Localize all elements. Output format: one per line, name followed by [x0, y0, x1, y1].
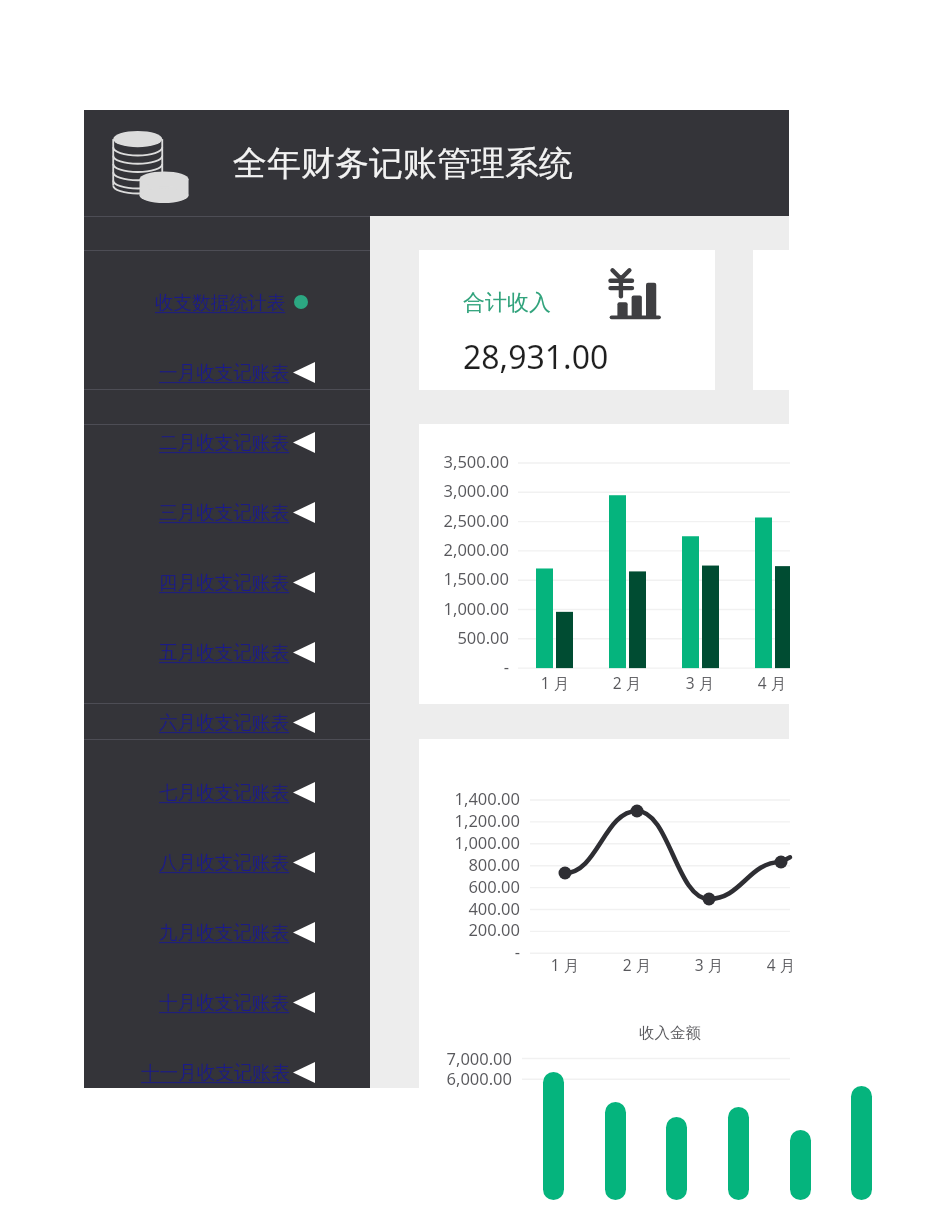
staticText: 28,931.00 — [463, 335, 609, 379]
button[interactable]: 九月收支记账表 — [84, 909, 370, 955]
staticText: 三月收支记账表 — [159, 501, 290, 524]
staticText: 1 月 — [530, 954, 600, 980]
staticText: 1 月 — [520, 672, 590, 698]
staticText: 400.00 — [400, 897, 520, 923]
button[interactable]: 合计收入 — [419, 250, 715, 390]
staticText: 全年财务记账管理系统 — [233, 142, 573, 185]
staticText: 1,000.00 — [389, 597, 509, 623]
other: Coins — [113, 131, 189, 203]
button[interactable]: Coins — [84, 110, 789, 216]
staticText: 一月收支记账表 — [159, 361, 290, 384]
button[interactable]: Income trend line chart — [419, 739, 950, 1230]
other: Income chart — [610, 270, 660, 320]
staticText: 1,000.00 — [400, 831, 520, 857]
button[interactable]: 五月收支记账表 — [84, 629, 370, 675]
staticText: 二月收支记账表 — [159, 431, 290, 454]
staticText: 500.00 — [389, 626, 509, 652]
staticText: 五月收支记账表 — [159, 641, 290, 664]
staticText: - — [400, 940, 520, 966]
staticText: 3 月 — [674, 954, 744, 980]
staticText: 六月收支记账表 — [159, 711, 290, 734]
staticText: 1,200.00 — [400, 809, 520, 835]
button[interactable]: 二月收支记账表 — [84, 419, 370, 465]
button[interactable]: 收支数据统计表 — [84, 279, 370, 325]
staticText: 七月收支记账表 — [159, 781, 290, 804]
staticText: 九月收支记账表 — [159, 921, 290, 944]
staticText: 200.00 — [400, 918, 520, 944]
button[interactable]: 三月收支记账表 — [84, 489, 370, 535]
staticText: 3,000.00 — [389, 479, 509, 505]
button[interactable]: 八月收支记账表 — [84, 839, 370, 885]
staticText: 1,500.00 — [389, 567, 509, 593]
button[interactable]: 四月收支记账表 — [84, 559, 370, 605]
button[interactable]: 六月收支记账表 — [84, 699, 370, 745]
staticText: 2,000.00 — [389, 538, 509, 564]
staticText: 800.00 — [400, 853, 520, 879]
staticText: 四月收支记账表 — [159, 571, 290, 594]
button[interactable]: 七月收支记账表 — [84, 769, 370, 815]
staticText: 1,400.00 — [400, 787, 520, 813]
staticText: 十一月收支记账表 — [141, 1061, 290, 1084]
staticText: 4 月 — [746, 954, 816, 980]
staticText: 收支数据统计表 — [155, 291, 286, 314]
button[interactable]: 一月收支记账表 — [84, 349, 370, 395]
staticText: 收入金额 — [590, 1023, 750, 1049]
staticText: 合计收入 — [463, 289, 551, 317]
staticText: 2 月 — [592, 672, 662, 698]
staticText: 4 月 — [737, 672, 807, 698]
staticText: 3 月 — [665, 672, 735, 698]
staticText: 2 月 — [602, 954, 672, 980]
staticText: 600.00 — [400, 875, 520, 901]
button[interactable]: 十一月收支记账表 — [84, 1049, 370, 1095]
staticText: 八月收支记账表 — [159, 851, 290, 874]
staticText: 7,000.00 — [392, 1047, 512, 1073]
staticText: 十月收支记账表 — [159, 991, 290, 1014]
staticText: 3,500.00 — [389, 450, 509, 476]
button[interactable]: Monthly income and expense bar chart — [419, 424, 950, 704]
button[interactable]: 十月收支记账表 — [84, 979, 370, 1025]
staticText: - — [389, 655, 509, 681]
staticText: 6,000.00 — [392, 1067, 512, 1093]
staticText: 2,500.00 — [389, 509, 509, 535]
